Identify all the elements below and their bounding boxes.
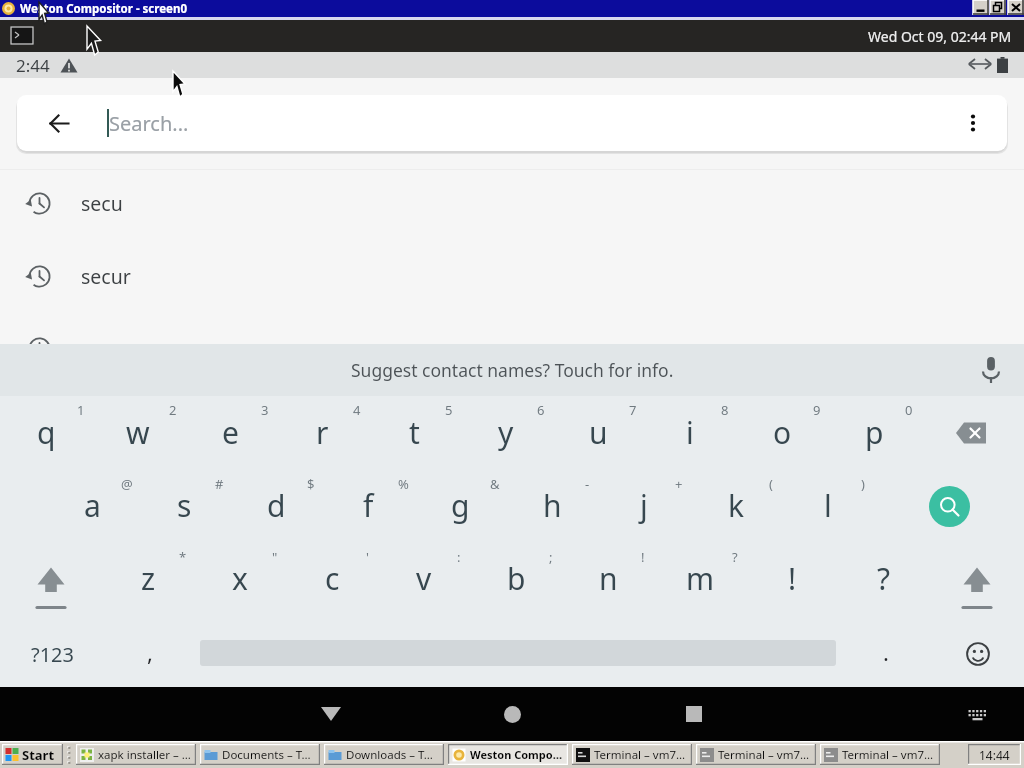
button[interactable]: c — [286, 543, 378, 616]
button[interactable]: y — [460, 396, 552, 470]
button[interactable]: f — [322, 470, 414, 543]
button[interactable]: Emoji — [932, 616, 1024, 687]
button[interactable]: Shift — [930, 543, 1024, 616]
staticText: ; — [549, 548, 553, 566]
button[interactable]: Shift — [0, 543, 102, 616]
staticText: secure — [81, 335, 142, 362]
staticText: ( — [769, 475, 773, 493]
staticText: secu — [81, 190, 123, 217]
staticText: 5 — [445, 401, 453, 419]
button[interactable]: Home — [488, 690, 536, 738]
button[interactable]: q — [0, 396, 92, 470]
button[interactable]: Back — [17, 95, 1007, 151]
button[interactable]: Voice input — [975, 354, 1007, 386]
staticText: Documents – T… — [222, 747, 311, 763]
staticText: ) — [861, 475, 865, 493]
button[interactable]: Documents – T… — [200, 744, 320, 765]
staticText: 4 — [353, 401, 361, 419]
staticText: e — [222, 412, 239, 453]
button[interactable]: Terminal – vm7… — [696, 744, 816, 765]
button[interactable]: Back — [37, 95, 81, 151]
button[interactable]: xapk installer – … — [76, 744, 196, 765]
staticText: y — [498, 412, 514, 453]
button[interactable]: Start — [2, 744, 63, 765]
button[interactable]: j — [598, 470, 690, 543]
staticText: 14:44 — [979, 747, 1010, 763]
staticText: u — [589, 412, 608, 453]
button[interactable]: Terminal – vm7… — [820, 744, 940, 765]
staticText: 2:44 — [16, 54, 50, 77]
staticText: Start — [22, 746, 55, 764]
button[interactable]: k — [690, 470, 782, 543]
button[interactable]: g — [414, 470, 506, 543]
button[interactable]: b — [470, 543, 562, 616]
staticText: f — [363, 485, 374, 526]
button[interactable]: a — [46, 470, 138, 543]
button[interactable]: Minimize — [973, 0, 989, 15]
button[interactable]: Search — [874, 470, 1024, 543]
button[interactable]: Weston Compo… — [448, 744, 568, 765]
button[interactable]: Weston terminal launcher — [10, 26, 34, 45]
staticText: 0 — [905, 401, 913, 419]
button[interactable]: . — [840, 616, 932, 687]
button[interactable]: Maximize — [990, 0, 1006, 15]
button[interactable]: ?123 — [0, 616, 104, 687]
staticText: j — [640, 485, 648, 526]
button[interactable]: secu — [0, 167, 1024, 239]
button[interactable]: Close — [1008, 0, 1024, 15]
staticText: + — [675, 475, 683, 493]
staticText: t — [409, 412, 420, 453]
button[interactable]: n — [562, 543, 654, 616]
button[interactable]: l — [782, 470, 874, 543]
staticText: Search... — [109, 110, 189, 137]
button[interactable]: Back — [307, 690, 355, 738]
button[interactable]: Backspace — [920, 396, 1024, 470]
button[interactable]: w — [92, 396, 184, 470]
staticText: Wed Oct 09, 02:44 PM — [868, 27, 1012, 46]
staticText: ! — [641, 548, 645, 566]
staticText: * — [179, 548, 187, 566]
staticText: Weston Compo… — [470, 747, 563, 762]
staticText: , — [147, 637, 153, 667]
button[interactable]: m — [654, 543, 746, 616]
button[interactable]: secur — [0, 240, 1024, 312]
button[interactable]: s — [138, 470, 230, 543]
staticText: Suggest contact names? Touch for info. — [351, 358, 674, 382]
staticText: o — [773, 412, 792, 453]
button[interactable]: Downloads – T… — [324, 744, 444, 765]
button[interactable]: z — [102, 543, 194, 616]
button[interactable]: x — [194, 543, 286, 616]
button[interactable]: Recents — [670, 690, 718, 738]
button[interactable]: More options — [939, 95, 1007, 151]
button[interactable]: i — [644, 396, 736, 470]
staticText: 7 — [629, 401, 637, 419]
staticText: q — [37, 412, 56, 453]
staticText: Terminal – vm7… — [718, 747, 810, 763]
staticText: k — [728, 485, 745, 526]
staticText: 8 — [721, 401, 729, 419]
button[interactable]: h — [506, 470, 598, 543]
staticText: l — [824, 485, 832, 526]
button[interactable]: p — [828, 396, 920, 470]
button[interactable]: v — [378, 543, 470, 616]
staticText: ! — [788, 558, 797, 599]
button[interactable]: t — [368, 396, 460, 470]
button[interactable]: r — [276, 396, 368, 470]
button[interactable]: d — [230, 470, 322, 543]
button[interactable]: u — [552, 396, 644, 470]
staticText: 1 — [77, 401, 85, 419]
button[interactable]: Terminal – vm7… — [572, 744, 692, 765]
button[interactable]: Switch keyboard — [957, 694, 997, 734]
button[interactable]: ? — [838, 543, 930, 616]
staticText: h — [543, 485, 562, 526]
button[interactable]: o — [736, 396, 828, 470]
button[interactable]: ! — [746, 543, 838, 616]
staticText: g — [451, 485, 470, 526]
staticText: & — [490, 475, 500, 493]
button[interactable]: Space — [196, 616, 840, 687]
button[interactable]: e — [184, 396, 276, 470]
button[interactable]: secure — [0, 312, 1024, 384]
staticText: : — [457, 548, 461, 566]
staticText: p — [865, 412, 884, 453]
button[interactable]: , — [104, 616, 196, 687]
